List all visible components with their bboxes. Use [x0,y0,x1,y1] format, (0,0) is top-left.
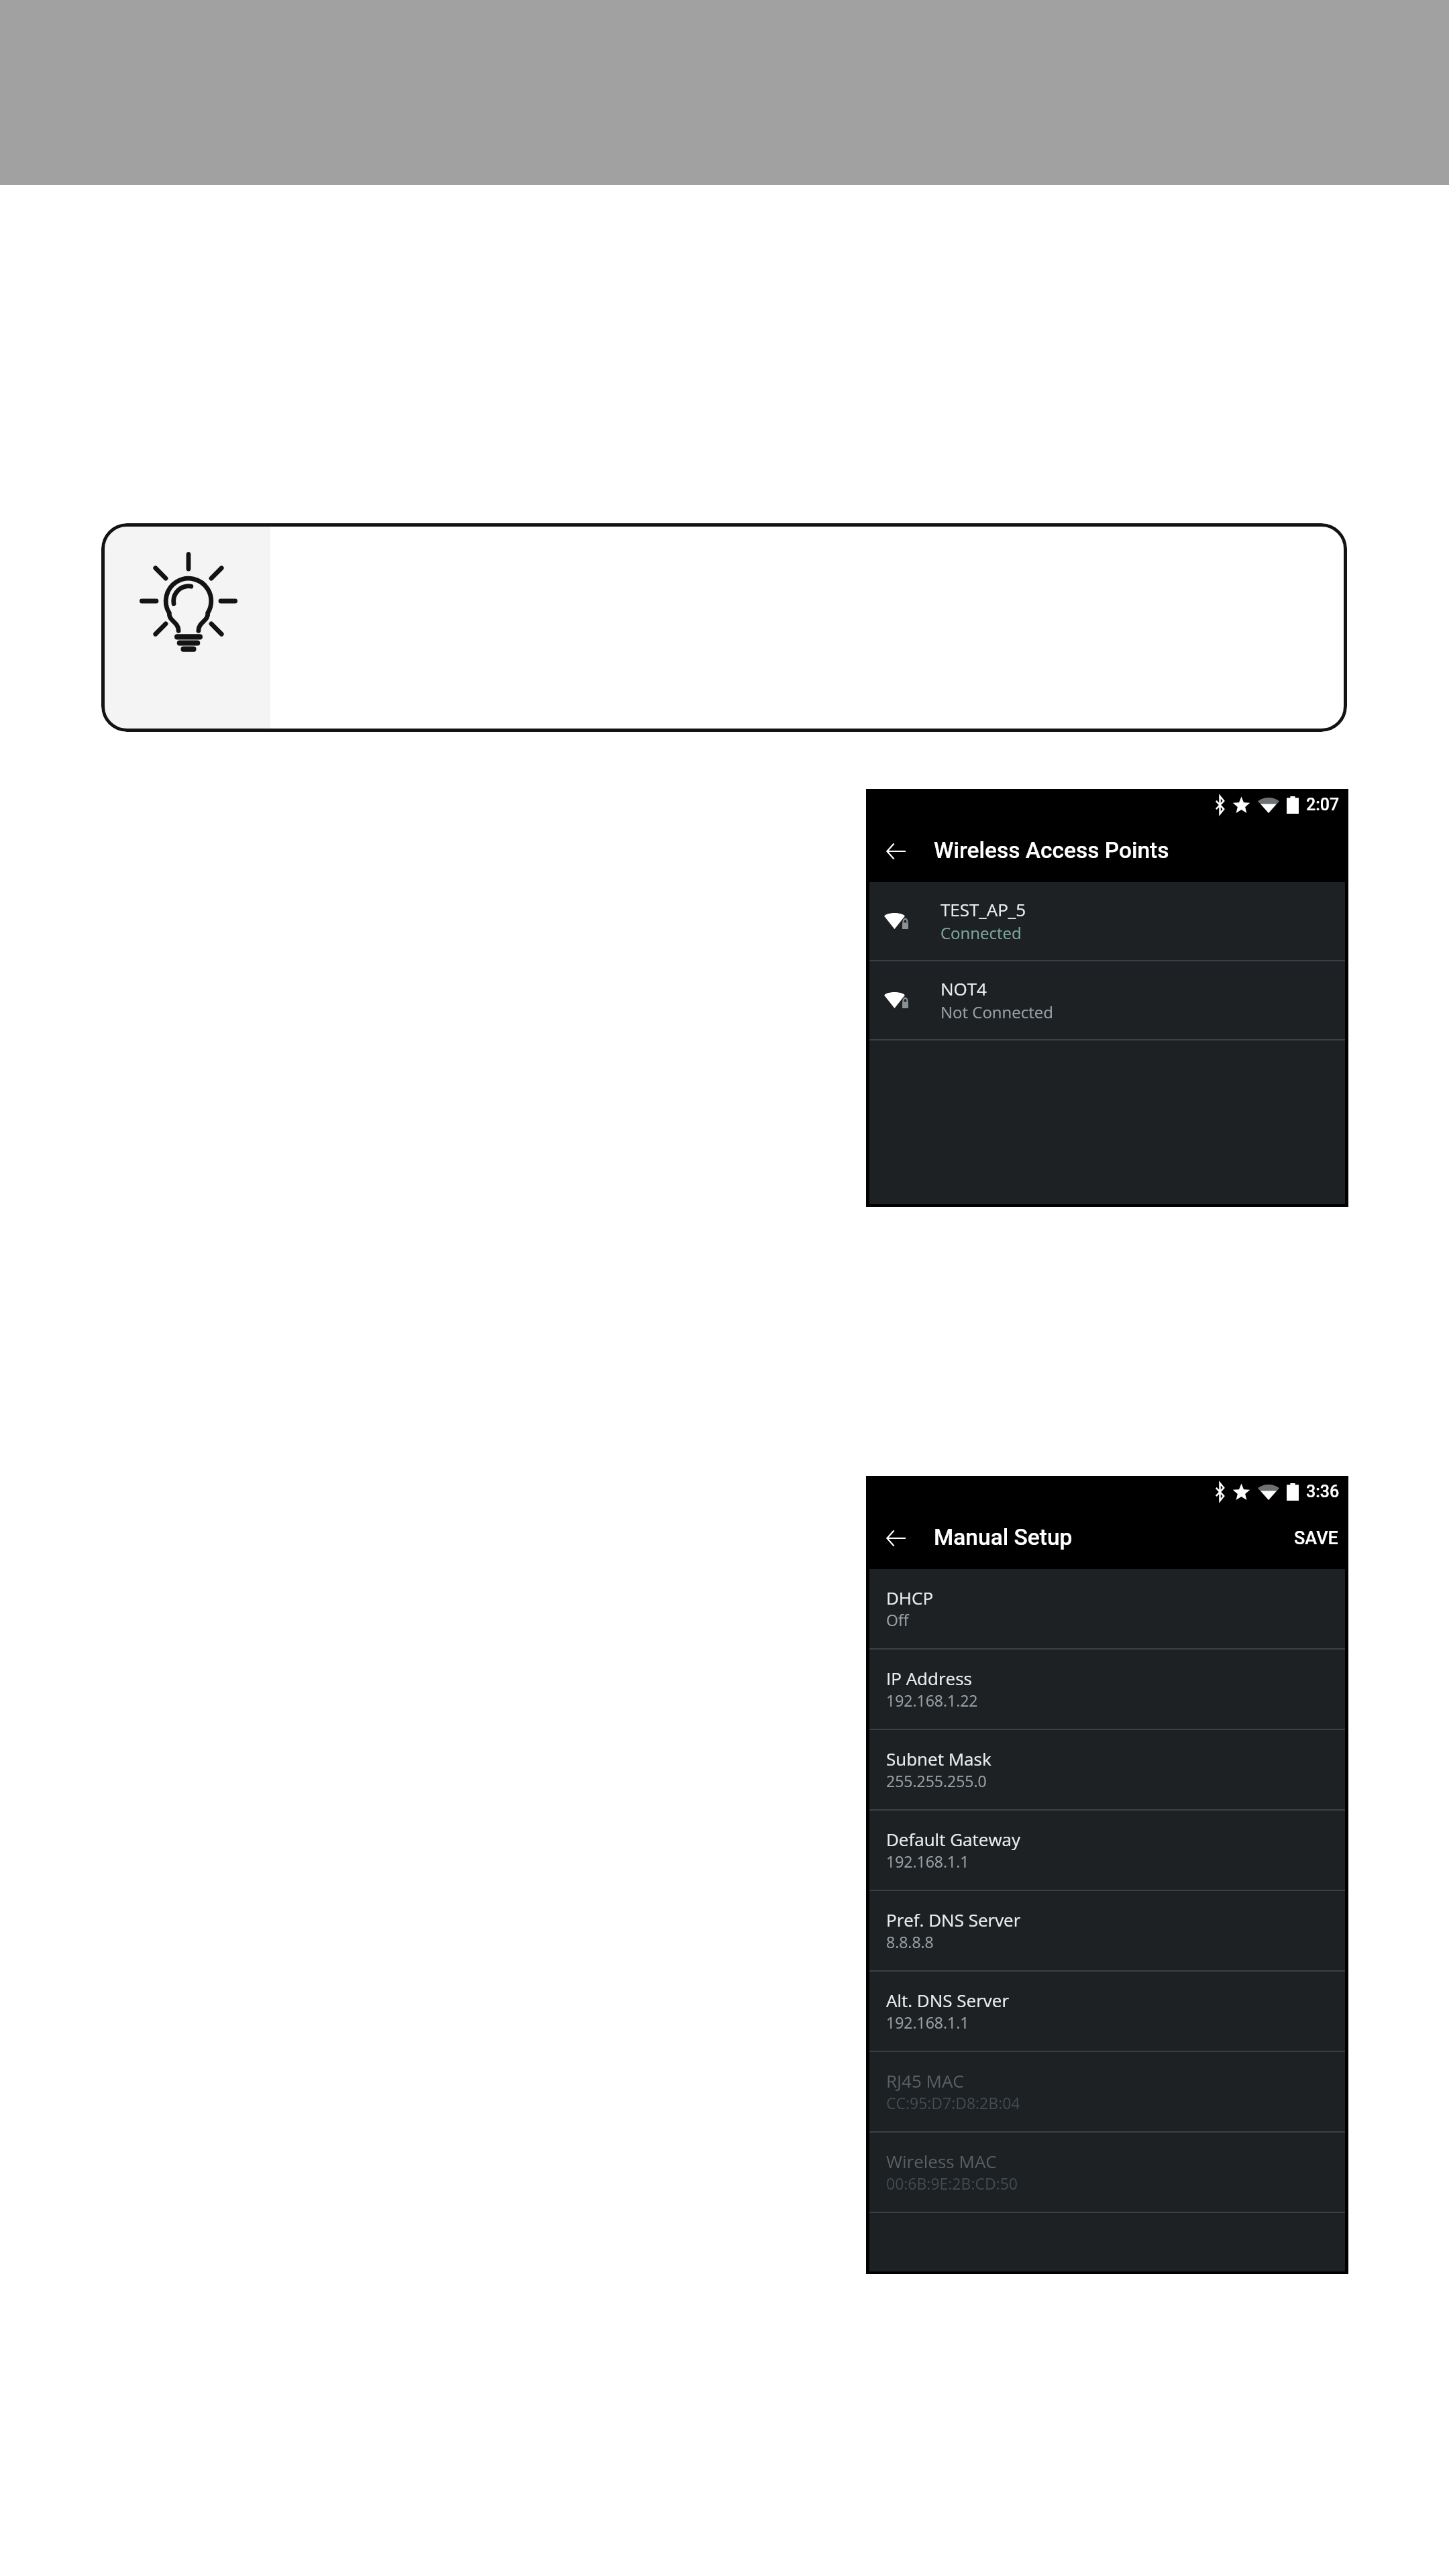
button[interactable]: Pref. DNS Server [869,1891,1345,1972]
staticText: Alt. DNS Server [886,1988,1010,2012]
staticText: RJ45 MAC [886,2069,964,2092]
button[interactable]: SAVE [1287,1507,1345,1569]
staticText: TEST_AP_5 [941,898,1026,921]
staticText: CC:95:D7:D8:2B:04 [886,2092,1020,2113]
staticText: 3:36 [1306,1482,1340,1501]
staticText: Off [886,1609,909,1630]
staticText: 00:6B:9E:2B:CD:50 [886,2173,1018,2194]
staticText: 192.168.1.22 [886,1690,978,1711]
button[interactable]: DHCP [869,1569,1345,1650]
staticText: Manual Setup [934,1524,1073,1550]
button[interactable]: Navigate back [881,1523,910,1553]
staticText: Subnet Mask [886,1747,991,1770]
button[interactable]: Alt. DNS Server [869,1972,1345,2052]
staticText: Pref. DNS Server [886,1908,1021,1931]
staticText: Connected [941,922,1022,944]
button[interactable]: Wireless MAC [869,2133,1345,2213]
button[interactable]: IP Address [869,1650,1345,1730]
staticText: Not Connected [941,1001,1053,1023]
button[interactable]: NOT4 [869,961,1345,1040]
button[interactable] [101,523,1347,732]
staticText: Wireless Access Points [934,837,1169,863]
staticText: DHCP [886,1586,934,1609]
staticText: 8.8.8.8 [886,1931,934,1952]
staticText: 192.168.1.1 [886,1851,969,1872]
button[interactable]: RJ45 MAC [869,2052,1345,2133]
button[interactable]: Subnet Mask [869,1730,1345,1811]
button[interactable]: Navigate back [881,837,910,866]
staticText: 192.168.1.1 [886,2012,969,2033]
staticText: 2:07 [1306,795,1340,814]
staticText: 255.255.255.0 [886,1770,987,1791]
button[interactable]: TEST_AP_5 [869,882,1345,961]
staticText: Wireless MAC [886,2149,997,2173]
staticText: SAVE [1294,1527,1338,1549]
staticText: IP Address [886,1666,972,1690]
staticText: Default Gateway [886,1827,1021,1851]
staticText: NOT4 [941,977,987,1000]
button[interactable]: Default Gateway [869,1811,1345,1891]
